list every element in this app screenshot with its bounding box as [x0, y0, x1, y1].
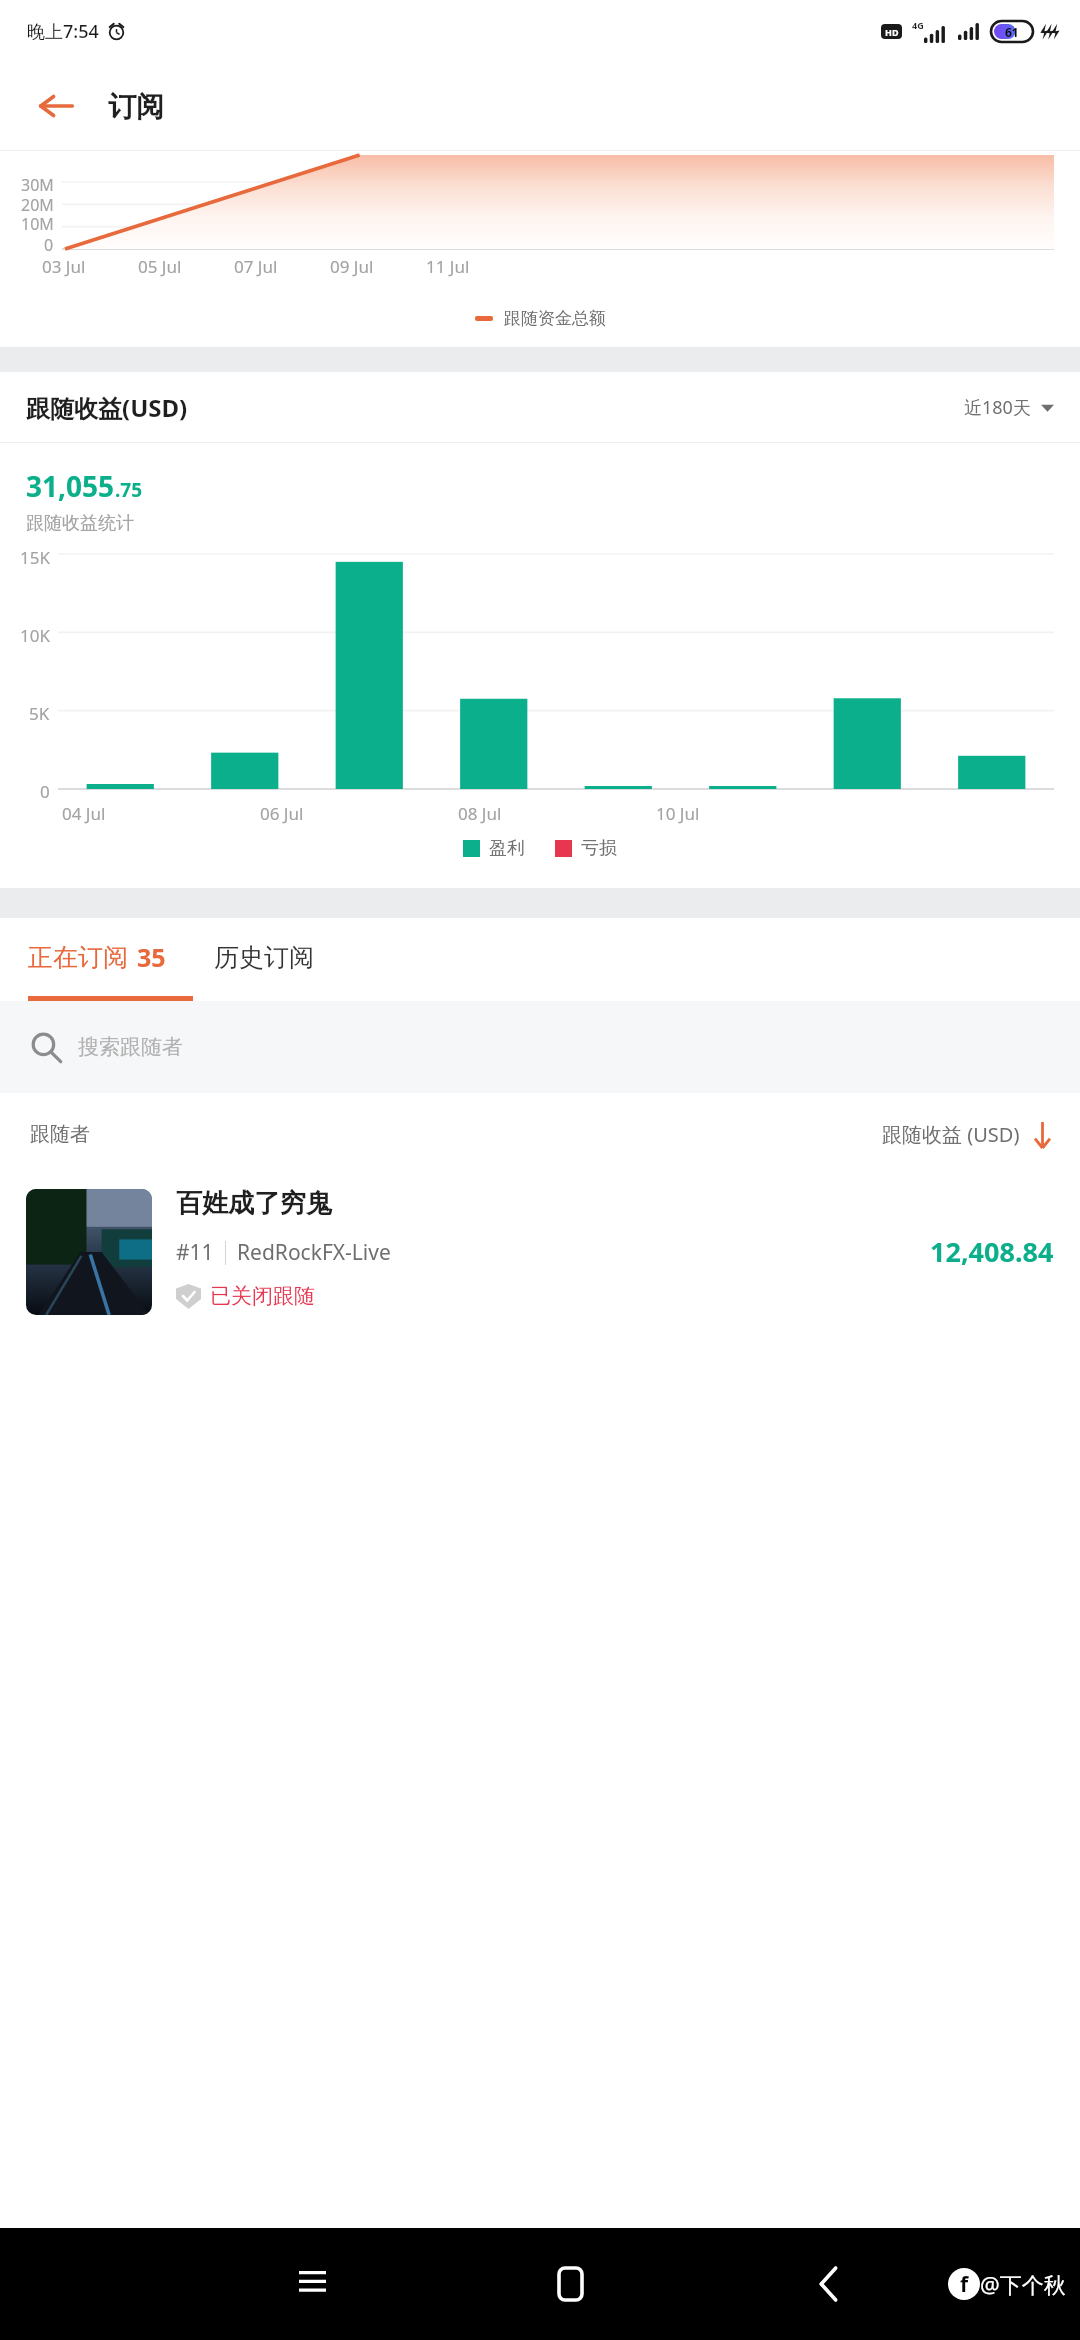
- staticText: 百姓成了穷鬼: [176, 1187, 332, 1220]
- staticText: 晚上7:54: [27, 19, 99, 44]
- staticText: 11 Jul: [426, 255, 470, 278]
- staticText: 07 Jul: [234, 255, 278, 278]
- staticText: 已关闭跟随: [210, 1283, 315, 1309]
- other: Sort descending: [1035, 1122, 1050, 1148]
- staticText: RedRockFX-Live: [237, 1238, 391, 1267]
- staticText: 跟随者: [30, 1122, 90, 1147]
- staticText: 跟随收益统计: [26, 512, 134, 535]
- staticText: 跟随资金总额: [504, 308, 606, 329]
- staticText: 35: [137, 940, 166, 974]
- staticText: 0: [40, 780, 50, 803]
- button[interactable]: Back: [26, 76, 86, 136]
- staticText: 历史订阅: [214, 942, 314, 973]
- staticText: 06 Jul: [260, 802, 304, 825]
- staticText: 20M: [21, 194, 54, 216]
- staticText: .75: [115, 477, 143, 503]
- button[interactable]: 百姓成了穷鬼: [26, 1175, 1054, 1335]
- button[interactable]: 正在订阅: [28, 940, 166, 974]
- staticText: 31,055: [26, 467, 115, 505]
- button[interactable]: 搜索跟随者: [30, 1001, 1080, 1093]
- staticText: 10K: [20, 624, 50, 647]
- staticText: 正在订阅: [28, 942, 128, 973]
- button[interactable]: 跟随收益 (USD): [882, 1121, 1050, 1148]
- staticText: 盈利: [489, 837, 525, 860]
- staticText: 近180天: [964, 395, 1031, 420]
- staticText: 61: [1005, 24, 1019, 40]
- staticText: 05 Jul: [138, 255, 182, 278]
- staticText: 10 Jul: [656, 802, 700, 825]
- staticText: 亏损: [581, 837, 617, 860]
- staticText: 搜索跟随者: [78, 1034, 183, 1060]
- button[interactable]: Recent apps: [275, 2247, 349, 2321]
- button[interactable]: 历史订阅: [214, 942, 314, 973]
- staticText: HD: [885, 26, 899, 38]
- staticText: 5K: [29, 702, 50, 725]
- staticText: 30M: [21, 174, 54, 196]
- staticText: 09 Jul: [330, 255, 374, 278]
- staticText: 08 Jul: [458, 802, 502, 825]
- staticText: 4G: [912, 19, 924, 31]
- staticText: #11: [176, 1238, 214, 1267]
- button[interactable]: Back: [791, 2247, 865, 2321]
- staticText: 10M: [21, 213, 54, 235]
- button[interactable]: 近180天: [964, 395, 1054, 420]
- staticText: 04 Jul: [62, 802, 106, 825]
- staticText: 15K: [20, 546, 50, 569]
- staticText: 03 Jul: [42, 255, 86, 278]
- staticText: 跟随收益 (USD): [882, 1121, 1020, 1148]
- staticText: 0: [44, 234, 54, 256]
- staticText: 订阅: [108, 89, 164, 124]
- staticText: 12,408.84: [930, 1233, 1054, 1270]
- staticText: @下个秋: [980, 2269, 1066, 2299]
- staticText: 跟随收益(USD): [26, 391, 188, 424]
- staticText: f: [960, 2270, 969, 2299]
- button[interactable]: Home: [533, 2247, 607, 2321]
